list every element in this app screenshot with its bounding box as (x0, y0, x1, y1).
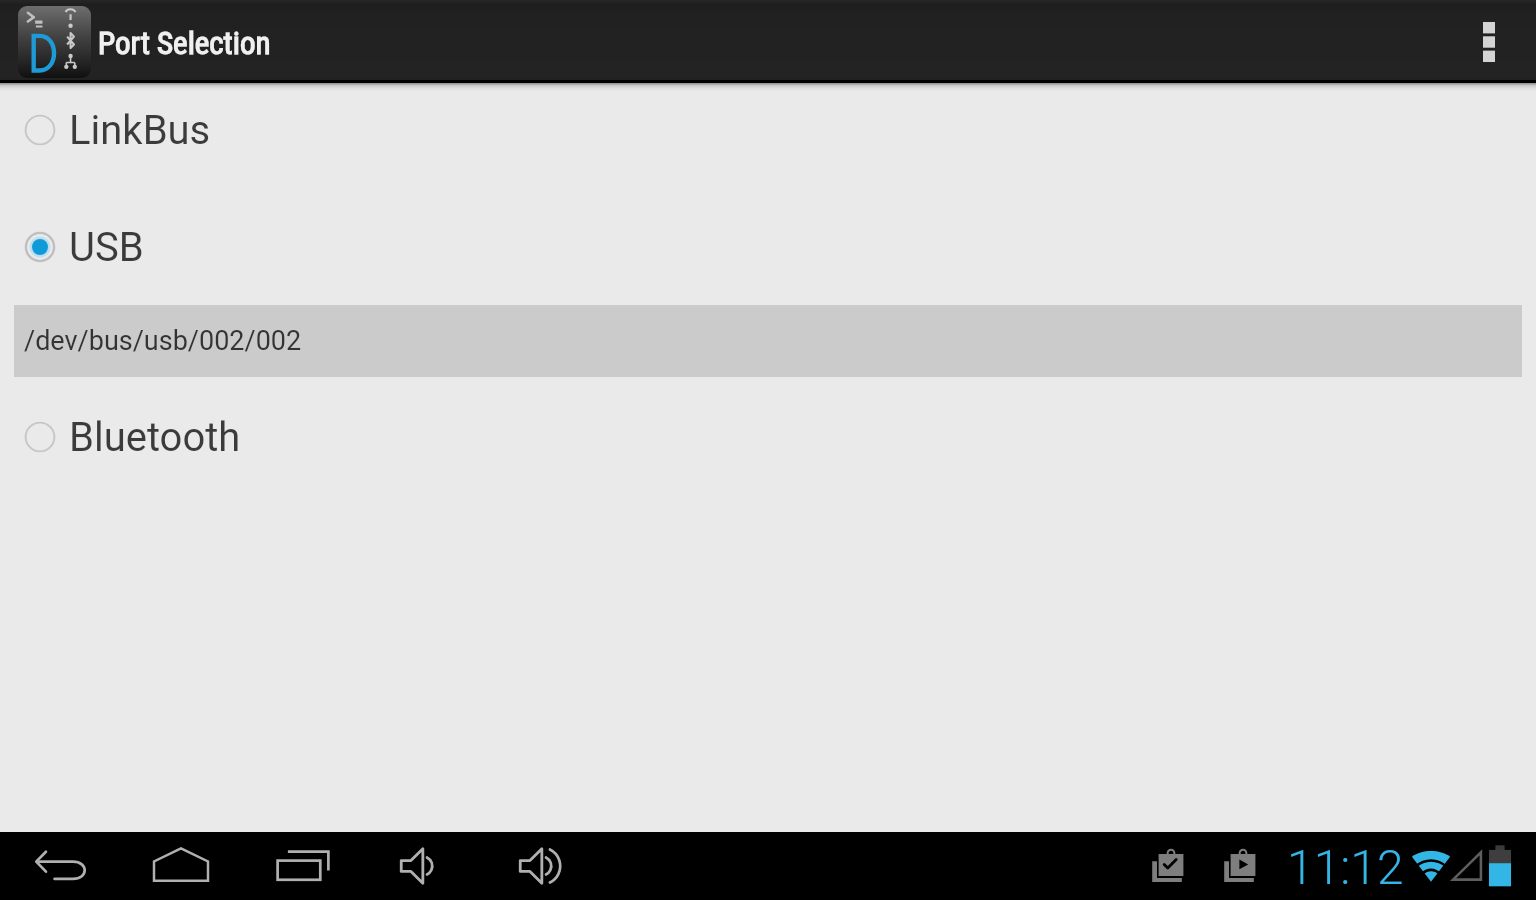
staticText: USB (69, 224, 144, 271)
other: Wi-Fi (1408, 832, 1454, 900)
other: Clipboard play (1221, 832, 1261, 900)
button[interactable]: Home (147, 832, 215, 900)
button[interactable]: Recents (269, 832, 337, 900)
staticText: /dev/bus/usb/002/002 (24, 325, 302, 357)
button[interactable]: Back (26, 832, 94, 900)
button[interactable]: Volume down (391, 832, 459, 900)
button[interactable]: Volume up (510, 832, 578, 900)
staticText: Bluetooth (69, 414, 241, 461)
button[interactable]: LinkBus (0, 94, 1536, 166)
button[interactable]: /dev/bus/usb/002/002 (14, 305, 1522, 377)
other: Signal (1451, 832, 1485, 900)
button[interactable]: USB (0, 211, 1536, 283)
other: Clipboard sync (1149, 832, 1189, 900)
staticText: Port Selection (98, 25, 271, 61)
button[interactable]: Home (18, 6, 91, 78)
button[interactable]: Bluetooth (0, 401, 1536, 473)
staticText: LinkBus (69, 107, 211, 154)
other: Battery (1477, 832, 1523, 900)
staticText: 11:12 (1287, 839, 1404, 895)
button[interactable]: More options (1456, 0, 1522, 83)
